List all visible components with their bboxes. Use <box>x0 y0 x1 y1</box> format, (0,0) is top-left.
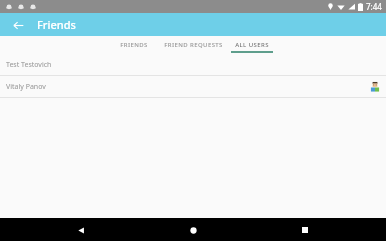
staticText: Vitaly Panov <box>6 82 46 92</box>
button[interactable]: Vitaly Panov <box>0 76 386 97</box>
button[interactable]: Back <box>8 15 28 35</box>
staticText: FRIENDS <box>120 41 148 49</box>
button[interactable]: Test Testovich <box>0 54 386 75</box>
button[interactable]: Recent apps <box>294 219 316 241</box>
button[interactable]: Home <box>182 219 204 241</box>
staticText: ALL USERS <box>235 41 269 49</box>
button[interactable]: FRIENDS <box>110 36 158 54</box>
button[interactable]: ALL USERS <box>228 36 276 54</box>
staticText: 7:44 <box>366 1 382 12</box>
staticText: FRIEND REQUESTS <box>164 41 223 49</box>
button[interactable]: Back <box>70 219 92 241</box>
staticText: Friends <box>37 17 76 32</box>
button[interactable]: FRIEND REQUESTS <box>158 36 228 54</box>
staticText: Test Testovich <box>6 60 52 70</box>
